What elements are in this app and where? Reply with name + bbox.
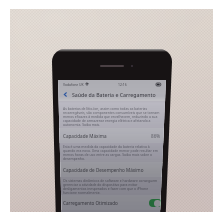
- button[interactable]: Capacidade de Desempenho Máximo: [58, 162, 166, 177]
- staticText: Esta é uma medida da capacidade da bater…: [63, 144, 160, 161]
- staticText: Os sistemas dinâmicos de software e hard…: [63, 178, 160, 195]
- button[interactable]: Carregamento Otimizado: [58, 195, 166, 210]
- staticText: 12:16: [118, 82, 127, 87]
- button[interactable]: Back: [61, 90, 70, 99]
- staticText: 86%: [151, 133, 161, 139]
- staticText: Vodafone UK: [63, 82, 84, 87]
- staticText: Capacidade de Desempenho Máximo: [63, 167, 144, 173]
- staticText: Para reduzir o envelhecimento da bateria…: [63, 211, 159, 215]
- staticText: Capacidade Máxima: [63, 133, 107, 139]
- button[interactable]: Capacidade Máxima: [58, 128, 166, 143]
- staticText: As baterias de lítio-íon, assim como tod…: [63, 106, 160, 127]
- staticText: Saúde da Bateria e Carregamento: [72, 91, 156, 98]
- staticText: Carregamento Otimizado: [63, 200, 118, 206]
